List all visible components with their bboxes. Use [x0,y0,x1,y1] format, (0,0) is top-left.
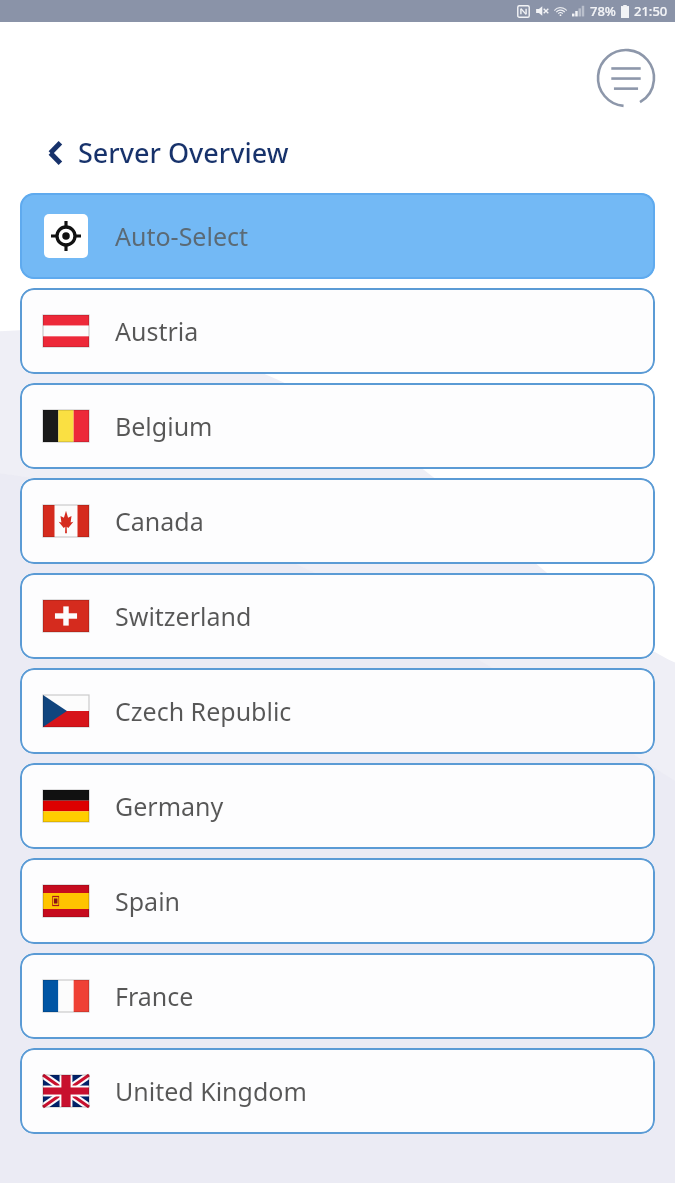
button[interactable]: Germany [20,763,655,849]
staticText: Canada [115,504,204,538]
staticText: Spain [115,884,181,918]
button[interactable]: Menu [595,47,657,109]
button[interactable]: Server Overview [46,134,655,171]
staticText: 21:50 [634,2,668,20]
button[interactable]: Spain [20,858,655,944]
staticText: 78% [590,2,616,20]
staticText: France [115,979,194,1013]
staticText: Austria [115,314,199,348]
button[interactable]: Switzerland [20,573,655,659]
staticText: Switzerland [115,599,252,633]
staticText: Server Overview [78,134,289,171]
button[interactable]: United Kingdom [20,1048,655,1134]
button[interactable]: Austria [20,288,655,374]
staticText: Belgium [115,409,213,443]
staticText: Germany [115,789,224,823]
button[interactable]: Czech Republic [20,668,655,754]
button[interactable]: Auto-Select [20,193,655,279]
button[interactable]: Belgium [20,383,655,469]
staticText: Auto-Select [115,219,249,253]
staticText: United Kingdom [115,1074,307,1108]
button[interactable]: France [20,953,655,1039]
button[interactable]: Canada [20,478,655,564]
staticText: Czech Republic [115,694,292,728]
